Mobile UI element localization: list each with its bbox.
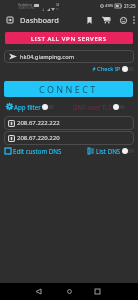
button[interactable]: Open drawer [3,12,17,28]
button[interactable]: Edit custom DNS [5,146,62,156]
staticText: 34 [56,3,60,7]
button[interactable]: LIST ALL VPN SERVERS [5,32,133,44]
staticText: 21:25 [124,3,136,9]
button[interactable]: Store [81,12,97,28]
staticText: VIVAPHONE [18,6,35,10]
staticText: Edit custom DNS [13,147,62,155]
staticText: Check IP [97,65,121,73]
staticText: Dashboard [20,15,59,25]
button[interactable]: 208.67.222.222 [4,116,134,130]
button[interactable]: Recent apps [87,284,108,299]
staticText: CONNECT [39,83,98,95]
staticText: 49% [105,3,114,9]
button[interactable]: App filter [6,102,54,111]
staticText: DNS over TLS [73,103,112,111]
button[interactable]: More options [129,12,138,28]
staticText: App filter [14,103,41,111]
button[interactable]: Shopping cart [98,12,114,28]
staticText: List DNS [96,147,121,155]
button[interactable]: CONNECT [4,81,133,97]
button[interactable]: Home [59,284,80,299]
button[interactable]: Back [28,284,49,299]
staticText: Vodafone [18,3,33,7]
button[interactable]: Check IP [88,65,134,73]
staticText: 208.67.222.222 [17,119,60,127]
staticText: hk04.giamping.com [20,53,75,61]
button[interactable]: List DNS [88,146,134,156]
button[interactable]: hk04.giamping.com [4,50,134,63]
button[interactable]: Account [115,12,131,28]
button[interactable]: 208.67.220.220 [4,131,134,145]
staticText: LIST ALL VPN SERVERS [31,34,107,42]
staticText: 208.67.220.220 [17,134,60,142]
staticText: ss [56,7,59,11]
button[interactable]: DNS over TLS [73,102,125,111]
